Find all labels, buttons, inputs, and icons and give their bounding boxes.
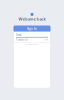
staticText: Sign In xyxy=(27,27,37,30)
staticText: Password xyxy=(16,38,28,41)
button[interactable]: Sign In xyxy=(13,25,50,32)
staticText: Email xyxy=(16,33,22,37)
staticText: Show xyxy=(44,39,48,41)
staticText: Forgot password? xyxy=(25,44,39,45)
staticText: Welcome back xyxy=(18,16,45,22)
